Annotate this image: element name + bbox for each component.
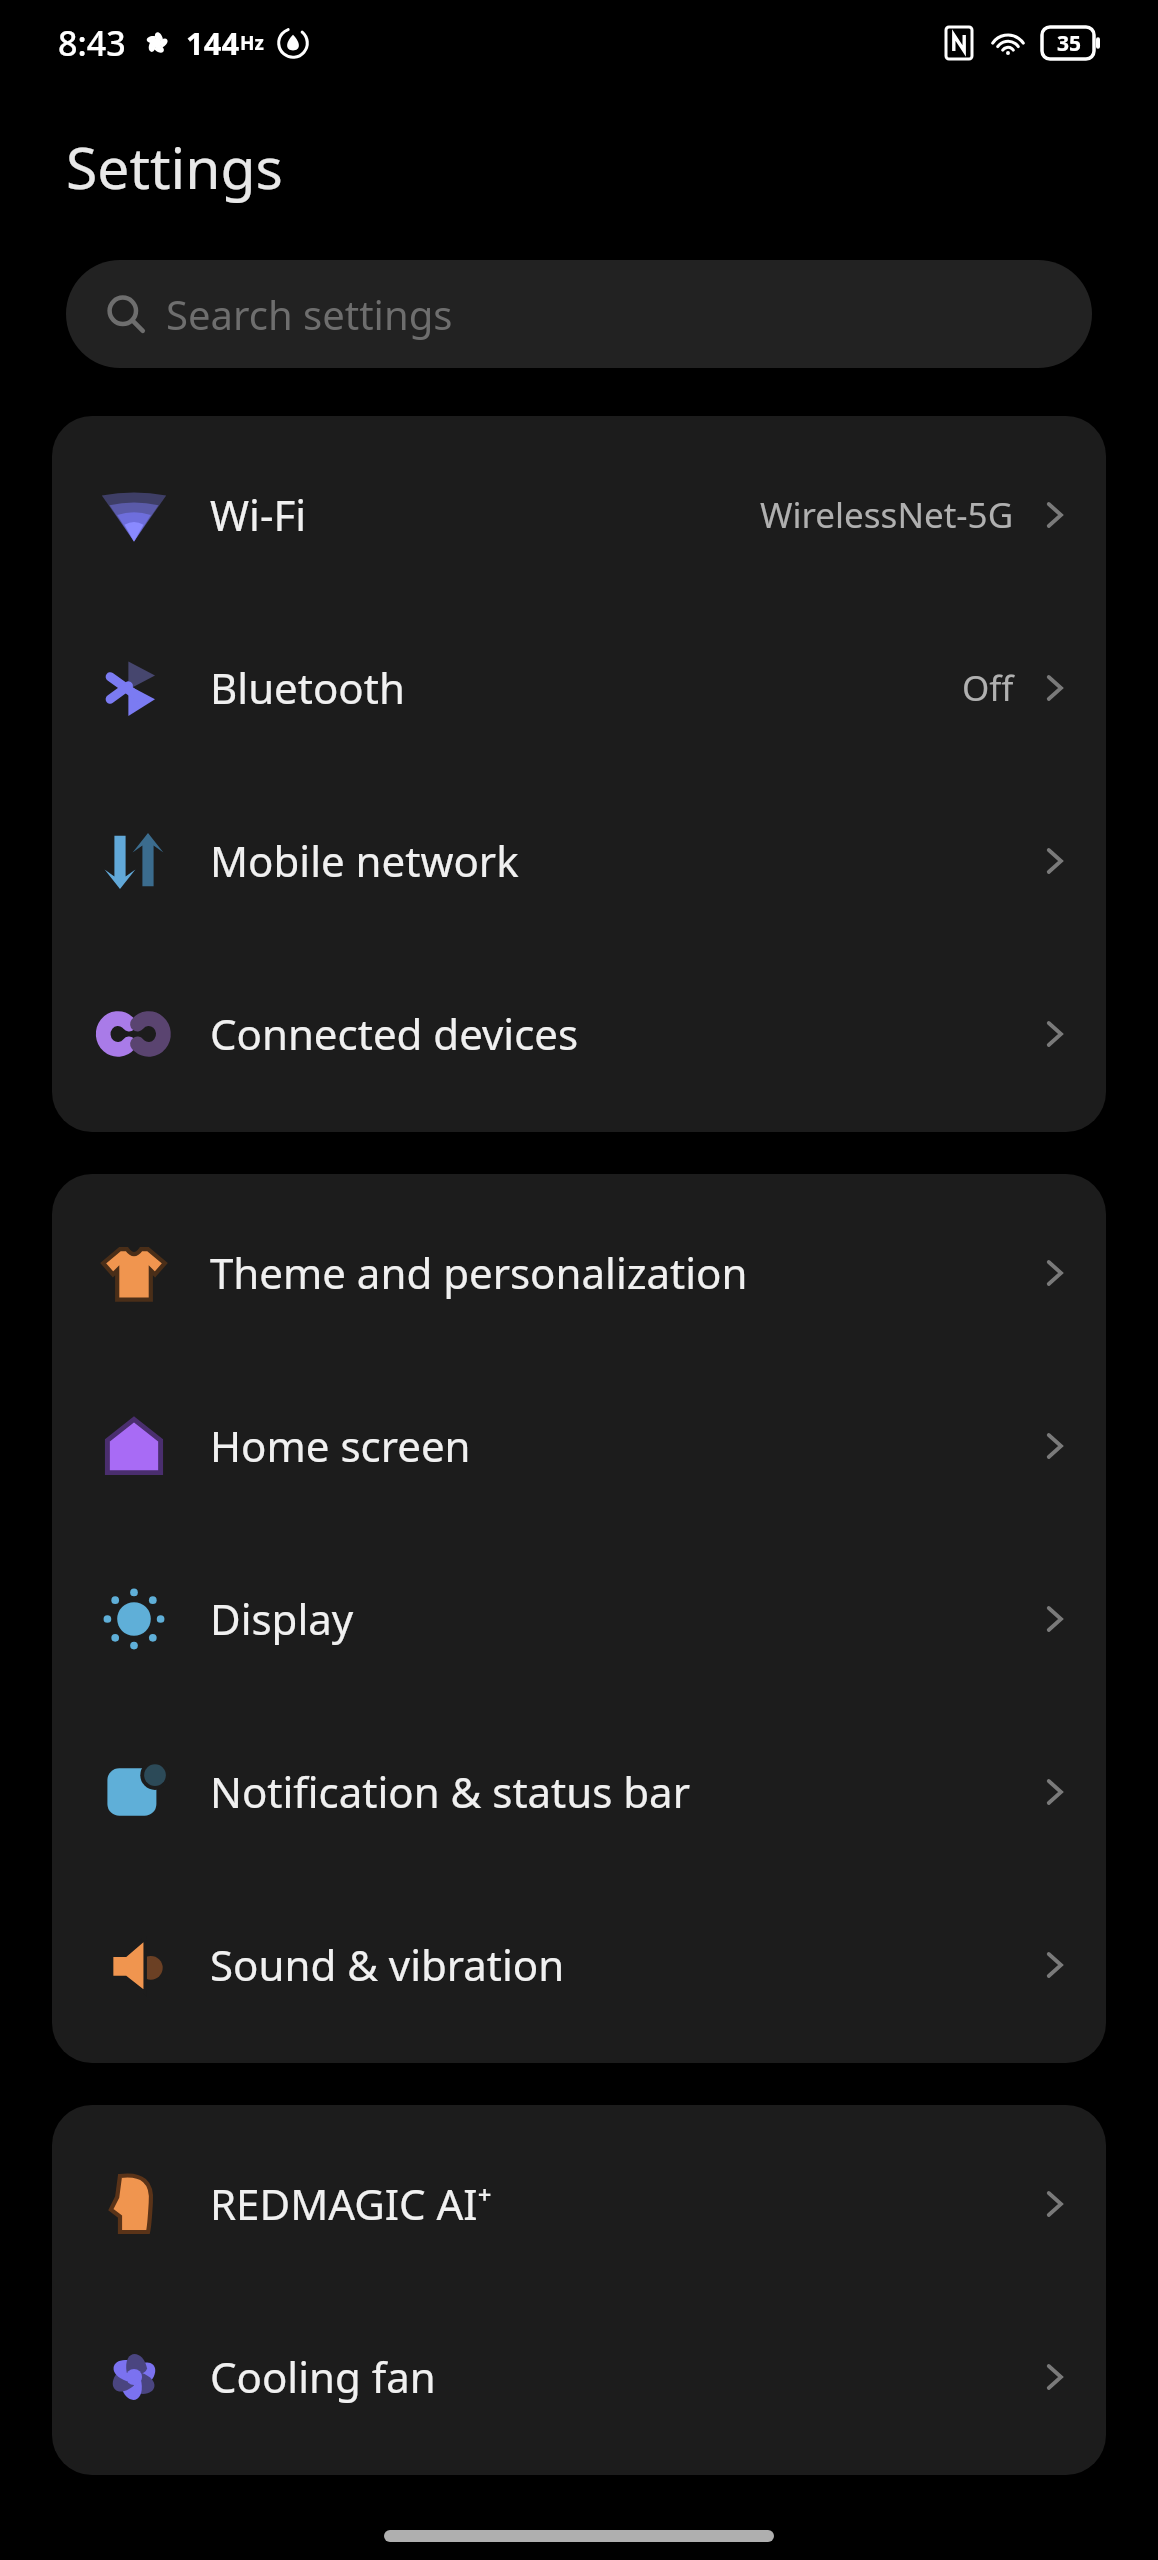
button[interactable]: Notification & status bar xyxy=(52,1705,1106,1878)
staticText: Off xyxy=(962,664,1014,712)
staticText: Theme and personalization xyxy=(210,1244,748,1301)
button[interactable]: Wi-Fi xyxy=(52,428,1106,601)
staticText: WirelessNet-5G xyxy=(760,491,1014,539)
staticText: Sound & vibration xyxy=(210,1936,565,1993)
staticText: Mobile network xyxy=(210,832,519,889)
staticText: Wi-Fi xyxy=(210,486,307,543)
staticText: Cooling fan xyxy=(210,2348,436,2405)
button[interactable]: Home screen xyxy=(52,1359,1106,1532)
button[interactable]: Theme and personalization xyxy=(52,1186,1106,1359)
staticText: 144 xyxy=(186,22,240,64)
button[interactable]: Cooling fan xyxy=(52,2290,1106,2463)
staticText: Connected devices xyxy=(210,1005,579,1062)
button[interactable]: REDMAGIC AI⁺ xyxy=(52,2117,1106,2290)
button[interactable]: Connected devices xyxy=(52,947,1106,1120)
staticText: 35 xyxy=(1057,29,1082,58)
button[interactable]: Bluetooth xyxy=(52,601,1106,774)
staticText: Notification & status bar xyxy=(210,1763,691,1820)
staticText: Search settings xyxy=(166,287,453,341)
staticText: 8:43 xyxy=(58,20,126,66)
staticText: Settings xyxy=(66,128,283,206)
button[interactable]: Search settings xyxy=(66,260,1092,368)
staticText: Home screen xyxy=(210,1417,471,1474)
staticText: Bluetooth xyxy=(210,659,405,716)
staticText: Display xyxy=(210,1590,354,1647)
button[interactable]: Display xyxy=(52,1532,1106,1705)
staticText: Hz xyxy=(240,30,264,56)
button[interactable]: Mobile network xyxy=(52,774,1106,947)
staticText: REDMAGIC AI⁺ xyxy=(210,2175,492,2232)
button[interactable]: Sound & vibration xyxy=(52,1878,1106,2051)
